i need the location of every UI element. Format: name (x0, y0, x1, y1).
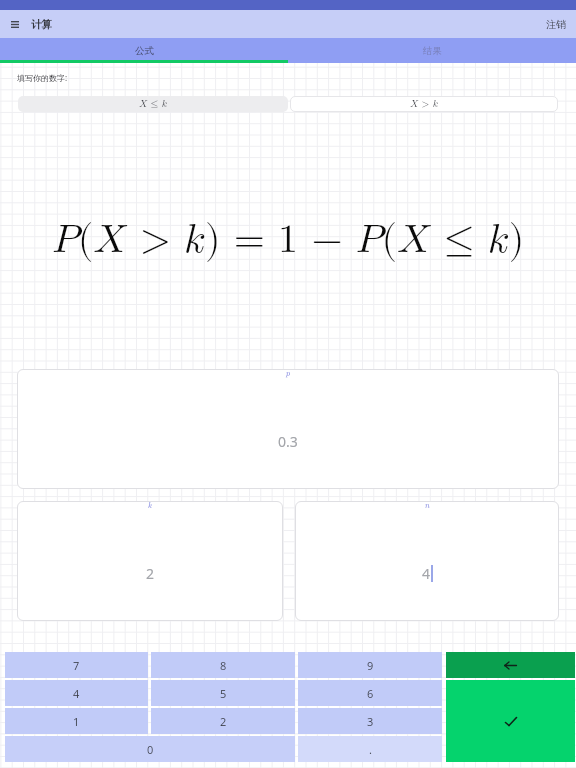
staticText: 7 (73, 658, 80, 673)
staticText: 8 (220, 658, 227, 673)
button[interactable]: 8 (151, 652, 295, 678)
staticText: 结果 (423, 45, 442, 57)
staticText: 4 (422, 564, 431, 583)
button[interactable]: 5 (151, 680, 295, 706)
button[interactable]: 𝑘 (17, 501, 283, 621)
staticText: 公式 (135, 45, 154, 57)
button[interactable]: 𝑝 (17, 369, 559, 489)
staticText: 𝑘 (148, 502, 153, 510)
button[interactable]: 3 (298, 708, 442, 734)
button[interactable] (446, 652, 575, 678)
button[interactable]: 9 (298, 652, 442, 678)
staticText: 𝑝 (286, 370, 291, 378)
button[interactable]: 7 (5, 652, 148, 678)
button[interactable]: 注销 (536, 10, 576, 38)
staticText: 注销 (546, 18, 566, 31)
staticText: 计算 (31, 18, 52, 31)
button[interactable]: 2 (151, 708, 295, 734)
staticText: 2 (146, 564, 155, 583)
staticText: 5 (220, 686, 227, 701)
staticText: . (369, 742, 372, 757)
button[interactable]: 1 (5, 708, 148, 734)
staticText: 3 (367, 714, 374, 729)
staticText: 𝑋 > 𝑘 (410, 99, 438, 109)
button[interactable]: 𝑋 ≤ 𝑘 (18, 96, 288, 112)
staticText: 0.3 (278, 432, 298, 451)
button[interactable]: 𝑛 (295, 501, 559, 621)
button[interactable]: 𝑋 > 𝑘 (290, 96, 558, 112)
staticText: 填写你的数字: (17, 72, 68, 83)
button[interactable] (0, 10, 30, 38)
button[interactable]: 4 (5, 680, 148, 706)
staticText: 9 (367, 658, 374, 673)
staticText: 𝑛 (425, 502, 430, 510)
staticText: 4 (73, 686, 80, 701)
button[interactable] (446, 680, 575, 762)
button[interactable]: 结果 (288, 38, 576, 63)
staticText: 𝑋 ≤ 𝑘 (139, 99, 167, 109)
staticText: 2 (220, 714, 227, 729)
staticText: 0 (147, 742, 154, 757)
staticText: 1 (73, 714, 80, 729)
staticText: 𝑃(𝑋 > 𝑘) = 1 − 𝑃(𝑋 ≤ 𝑘) (52, 220, 525, 260)
button[interactable]: 6 (298, 680, 442, 706)
button[interactable]: 0 (5, 736, 295, 762)
button[interactable]: 公式 (0, 38, 288, 63)
staticText: 6 (367, 686, 374, 701)
